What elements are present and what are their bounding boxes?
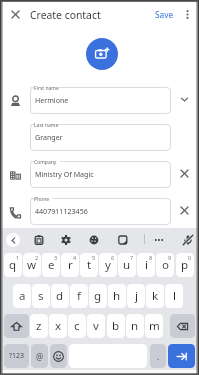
staticText: n bbox=[131, 318, 139, 334]
staticText: c bbox=[74, 318, 80, 334]
staticText: 7 bbox=[130, 254, 134, 262]
button[interactable]: Emoji bbox=[50, 344, 67, 368]
staticText: d bbox=[56, 288, 64, 304]
button[interactable]: h bbox=[108, 284, 126, 308]
staticText: First name bbox=[34, 85, 59, 92]
staticText: 9 bbox=[168, 254, 172, 262]
button[interactable]: i bbox=[137, 253, 155, 277]
button[interactable]: More bbox=[151, 232, 167, 248]
button[interactable]: Backspace bbox=[170, 314, 195, 338]
button[interactable]: u bbox=[118, 253, 136, 277]
staticText: Granger bbox=[35, 132, 63, 142]
button[interactable]: ?123 bbox=[4, 344, 29, 368]
staticText: f bbox=[77, 288, 81, 304]
button[interactable]: d bbox=[51, 284, 69, 308]
staticText: @ bbox=[36, 351, 44, 362]
staticText: 2 bbox=[35, 254, 39, 262]
button[interactable]: s bbox=[32, 284, 50, 308]
button[interactable]: m bbox=[145, 314, 163, 338]
button[interactable]: q bbox=[4, 253, 22, 277]
staticText: p bbox=[181, 257, 189, 273]
button[interactable]: Clipboard bbox=[31, 232, 47, 248]
button[interactable]: f bbox=[70, 284, 88, 308]
button[interactable]: l bbox=[165, 284, 183, 308]
button[interactable]: . bbox=[150, 344, 166, 368]
button[interactable]: k bbox=[146, 284, 164, 308]
staticText: t bbox=[87, 257, 92, 273]
staticText: l bbox=[173, 288, 176, 304]
button[interactable]: c bbox=[68, 314, 86, 338]
staticText: 1 bbox=[16, 254, 20, 262]
button[interactable]: Clear bbox=[176, 165, 192, 181]
button[interactable]: n bbox=[126, 314, 144, 338]
staticText: 5 bbox=[92, 254, 96, 262]
button[interactable]: Save bbox=[153, 6, 176, 23]
staticText: Last name bbox=[34, 122, 59, 129]
staticText: o bbox=[162, 257, 169, 273]
button[interactable]: a bbox=[13, 284, 31, 308]
button[interactable]: Microphone off bbox=[180, 232, 196, 248]
staticText: b bbox=[112, 318, 120, 334]
button[interactable]: Shift bbox=[4, 314, 29, 338]
staticText: 8 bbox=[149, 254, 153, 262]
staticText: 3 bbox=[54, 254, 58, 262]
staticText: z bbox=[36, 318, 42, 334]
button[interactable]: b bbox=[107, 314, 125, 338]
staticText: q bbox=[9, 257, 17, 273]
staticText: i bbox=[145, 257, 148, 273]
button[interactable]: o bbox=[156, 253, 174, 277]
staticText: g bbox=[94, 288, 102, 304]
staticText: s bbox=[38, 288, 44, 304]
staticText: ?123 bbox=[9, 351, 25, 361]
staticText: Ministry Of Magic bbox=[35, 169, 94, 179]
staticText: 0 bbox=[188, 254, 192, 262]
staticText: w bbox=[27, 257, 37, 273]
button[interactable]: Settings bbox=[58, 232, 74, 248]
staticText: x bbox=[55, 318, 62, 334]
button[interactable]: Stickers bbox=[115, 232, 131, 248]
staticText: j bbox=[135, 288, 138, 304]
button[interactable]: @ bbox=[31, 344, 48, 368]
button[interactable]: Expand bbox=[176, 91, 192, 107]
staticText: v bbox=[93, 318, 99, 334]
staticText: Company bbox=[34, 159, 57, 166]
staticText: k bbox=[152, 288, 159, 304]
button[interactable]: Theme bbox=[86, 232, 102, 248]
button[interactable]: r bbox=[61, 253, 79, 277]
button[interactable]: Enter bbox=[168, 344, 195, 368]
staticText: r bbox=[68, 257, 73, 273]
staticText: Hermione bbox=[35, 95, 69, 105]
button[interactable]: Clear bbox=[176, 202, 192, 218]
staticText: a bbox=[19, 288, 26, 304]
button[interactable]: x bbox=[49, 314, 67, 338]
button[interactable]: More options bbox=[180, 7, 194, 21]
staticText: y bbox=[105, 257, 111, 273]
button[interactable]: w bbox=[23, 253, 41, 277]
staticText: Create contact bbox=[30, 8, 101, 22]
button[interactable]: Add photo bbox=[86, 38, 118, 70]
button[interactable]: Back bbox=[6, 233, 20, 247]
button[interactable]: z bbox=[30, 314, 48, 338]
staticText: 4407911123456 bbox=[35, 206, 88, 216]
button[interactable]: t bbox=[80, 253, 98, 277]
button[interactable]: p bbox=[176, 253, 194, 277]
button[interactable]: v bbox=[87, 314, 105, 338]
button[interactable]: y bbox=[99, 253, 117, 277]
staticText: 6 bbox=[111, 254, 115, 262]
staticText: . bbox=[157, 351, 160, 362]
staticText: h bbox=[113, 288, 121, 304]
staticText: Save bbox=[155, 9, 174, 20]
staticText: u bbox=[123, 257, 131, 273]
button[interactable]: e bbox=[42, 253, 60, 277]
button[interactable]: g bbox=[89, 284, 107, 308]
button[interactable]: Close bbox=[7, 6, 23, 22]
staticText: m bbox=[149, 318, 160, 334]
staticText: 4 bbox=[73, 254, 77, 262]
button[interactable]: j bbox=[127, 284, 145, 308]
staticText: Phone bbox=[34, 196, 50, 203]
staticText: e bbox=[48, 257, 55, 273]
